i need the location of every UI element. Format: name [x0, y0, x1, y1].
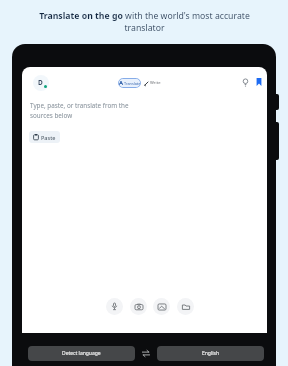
staticText: D: [38, 78, 43, 87]
staticText: Detect language: [62, 350, 101, 357]
staticText: translator: [124, 22, 165, 34]
button[interactable]: [106, 298, 123, 315]
button[interactable]: [130, 298, 147, 315]
button[interactable]: English: [157, 346, 264, 361]
staticText: English: [202, 350, 220, 357]
button[interactable]: [177, 298, 194, 315]
button[interactable]: Paste: [29, 131, 60, 143]
button[interactable]: [256, 78, 262, 86]
staticText: Type, paste, or translate from the sourc…: [30, 101, 129, 120]
staticText: Paste: [41, 134, 56, 141]
button[interactable]: Write: [144, 78, 161, 88]
staticText: Translate: [124, 81, 141, 86]
button[interactable]: Detect language: [28, 346, 135, 361]
button[interactable]: Translate: [118, 78, 141, 88]
button[interactable]: [33, 75, 49, 91]
staticText: Write: [150, 80, 161, 86]
button[interactable]: [242, 78, 249, 87]
button[interactable]: [139, 346, 153, 361]
button[interactable]: [153, 298, 170, 315]
staticText: Translate on the go with the world's mos…: [39, 10, 250, 22]
